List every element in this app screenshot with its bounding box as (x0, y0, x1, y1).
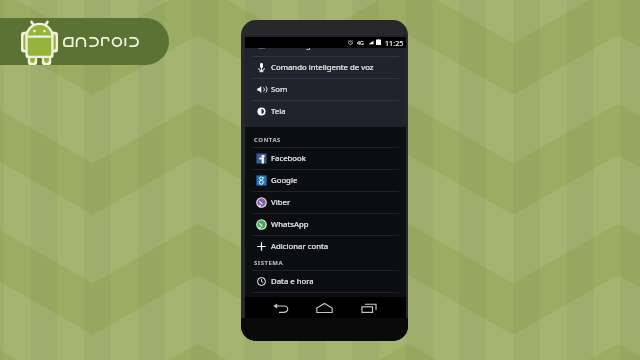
staticText: Google (271, 175, 298, 186)
button[interactable]: Som (245, 79, 406, 100)
button[interactable]: WhatsApp (245, 214, 406, 235)
staticText: Comando inteligente de voz (271, 62, 374, 73)
staticText: SISTEMA (254, 259, 284, 267)
staticText: Som (271, 84, 288, 95)
button[interactable]: Facebook (245, 148, 406, 169)
staticText: Viber (271, 197, 291, 208)
staticText: Tela inteligente (271, 40, 327, 51)
button[interactable]: Android (0, 18, 169, 65)
button[interactable]: Adicionar conta (245, 236, 406, 257)
button[interactable]: Recent apps (349, 297, 389, 318)
button[interactable]: Data e hora (245, 271, 406, 292)
staticText: CONTAS (254, 136, 281, 144)
button[interactable]: Viber (245, 192, 406, 213)
staticText: WhatsApp (271, 219, 309, 230)
button[interactable]: Google (245, 170, 406, 191)
staticText: 11:25 (385, 38, 404, 48)
staticText: Tela (271, 106, 286, 117)
button[interactable]: Home (304, 297, 344, 318)
button[interactable]: Comando inteligente de voz (245, 57, 406, 78)
button[interactable]: Tela inteligente (245, 35, 406, 56)
staticText: Facebook (271, 153, 306, 164)
button[interactable]: Back (260, 297, 300, 318)
staticText: Data e hora (271, 276, 314, 287)
staticText: Adicionar conta (271, 241, 329, 252)
button[interactable]: Tela (245, 101, 406, 122)
staticText: 4G (357, 39, 364, 46)
